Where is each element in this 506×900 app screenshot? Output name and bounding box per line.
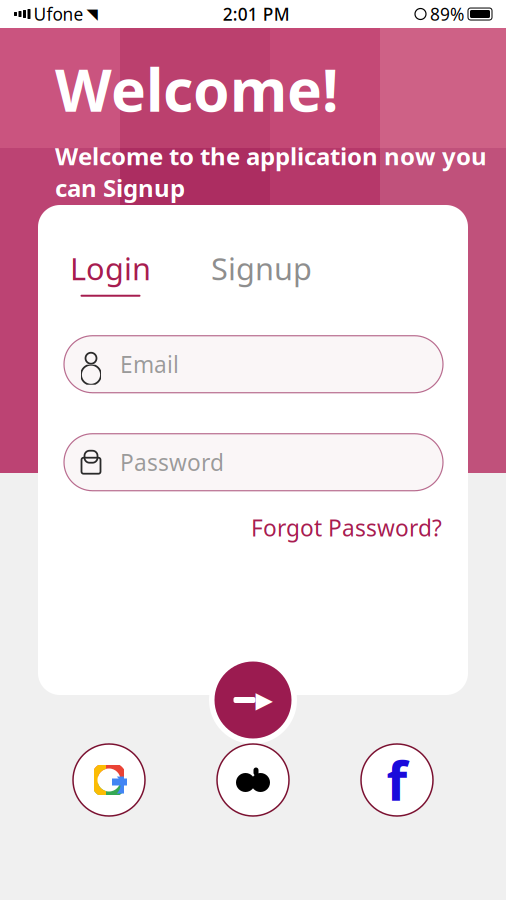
- staticText: Signup: [211, 248, 312, 289]
- staticText: 89%: [430, 2, 464, 25]
- button[interactable]: Login: [70, 248, 151, 297]
- button[interactable]: Continue: [209, 656, 297, 744]
- button[interactable]: Signup: [211, 248, 312, 297]
- staticText: Welcome!: [55, 50, 339, 128]
- staticText: Welcome to the application now you can S…: [55, 140, 487, 204]
- staticText: Ufone: [33, 2, 83, 25]
- button[interactable]: Forgot Password?: [251, 513, 442, 543]
- staticText: ◥: [86, 6, 97, 22]
- button[interactable]: Sign in with Apple: [217, 744, 289, 816]
- button[interactable]: Password: [64, 434, 443, 491]
- button[interactable]: Email: [64, 336, 443, 393]
- staticText: f: [386, 745, 407, 815]
- staticText: Email: [120, 349, 179, 379]
- button[interactable]: Sign in with Google: [73, 744, 145, 816]
- staticText: Login: [70, 248, 151, 289]
- staticText: Password: [120, 447, 224, 477]
- staticText: ▶: [255, 687, 272, 713]
- button[interactable]: Sign in with Facebook: [361, 744, 433, 816]
- staticText: 2:01 PM: [223, 2, 290, 25]
- staticText: Forgot Password?: [251, 513, 442, 543]
